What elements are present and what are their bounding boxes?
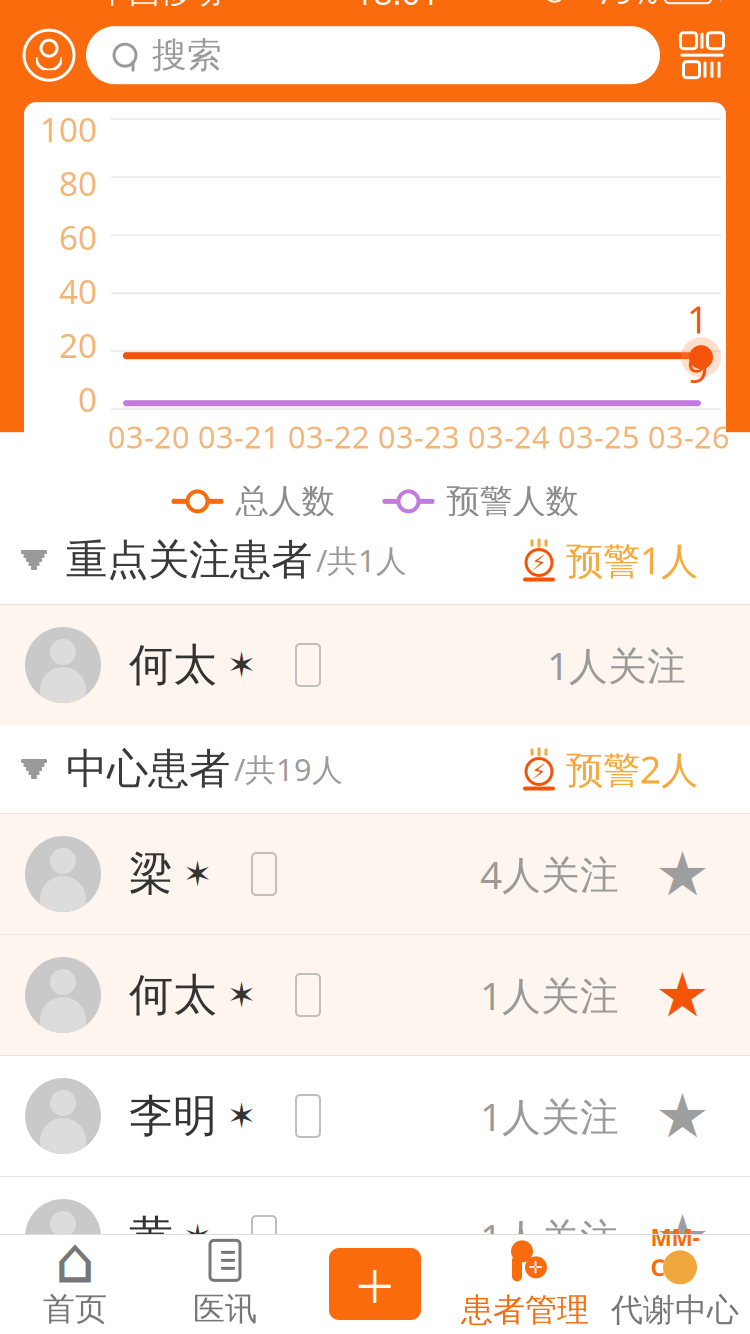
- staticText: 40: [59, 269, 97, 313]
- button[interactable]: MMC: [600, 1234, 750, 1334]
- staticText: MMC: [650, 1222, 699, 1282]
- staticText: 03-20: [108, 416, 190, 457]
- staticText: 总人数: [235, 481, 334, 522]
- button[interactable]: 搜索: [86, 26, 660, 84]
- button[interactable]: 个人中心: [12, 18, 86, 92]
- staticText: ★: [655, 1202, 710, 1272]
- staticText: 黄: [129, 1210, 173, 1264]
- button[interactable]: ⌂: [0, 1234, 150, 1334]
- staticText: 80: [59, 161, 97, 205]
- staticText: 19: [687, 294, 708, 393]
- staticText: 03-26: [648, 416, 730, 457]
- staticText: 梁: [129, 847, 173, 901]
- staticText: ✶: [227, 645, 256, 685]
- staticText: ⚡︎: [531, 550, 546, 575]
- staticText: /共19人: [234, 749, 343, 789]
- staticText: 20: [59, 323, 97, 367]
- button[interactable]: 何太: [0, 935, 750, 1055]
- staticText: 03-22: [288, 416, 370, 457]
- staticText: 1人关注: [480, 969, 619, 1021]
- staticText: +: [355, 1238, 395, 1330]
- staticText: 中心患者: [66, 744, 230, 794]
- staticText: ✶: [227, 975, 256, 1015]
- staticText: ⚡︎: [531, 759, 546, 784]
- staticText: 0: [78, 377, 97, 421]
- button[interactable]: 何太: [0, 605, 750, 725]
- staticText: 代谢中心: [611, 1290, 739, 1330]
- staticText: 预警人数: [446, 481, 578, 522]
- staticText: 中国移动: [98, 0, 222, 11]
- staticText: /共1人: [316, 540, 407, 580]
- staticText: ✶: [183, 1217, 212, 1257]
- staticText: 03-24: [468, 416, 550, 457]
- staticText: 100: [40, 107, 97, 151]
- staticText: 03-23: [378, 416, 460, 457]
- staticText: 重点关注患者: [66, 535, 312, 585]
- staticText: 1人关注: [547, 639, 686, 691]
- staticText: 4人关注: [480, 848, 619, 900]
- button[interactable]: 中心患者: [0, 725, 750, 813]
- staticText: 1人关注: [480, 1211, 619, 1263]
- button[interactable]: 新增: [300, 1234, 450, 1334]
- staticText: ⚡︎: [718, 0, 736, 7]
- staticText: 何太: [129, 638, 217, 692]
- button[interactable]: 重点关注患者: [0, 516, 750, 604]
- staticText: ⌂: [54, 1224, 95, 1297]
- button[interactable]: 梁: [0, 814, 750, 934]
- button[interactable]: 医讯: [150, 1234, 300, 1334]
- staticText: 60: [59, 215, 97, 259]
- staticText: ✶: [227, 1096, 256, 1136]
- staticText: ★: [655, 1081, 710, 1151]
- staticText: 何太: [129, 968, 217, 1022]
- button[interactable]: ✛: [450, 1234, 600, 1334]
- staticText: 搜索: [152, 34, 222, 76]
- button[interactable]: 黄: [0, 1177, 750, 1297]
- staticText: 预警2人: [566, 744, 698, 794]
- staticText: 首页: [43, 1289, 107, 1329]
- button[interactable]: 李明: [0, 1056, 750, 1176]
- staticText: ✶: [183, 854, 212, 894]
- staticText: 1人关注: [480, 1090, 619, 1142]
- button[interactable]: 扫一扫: [660, 18, 744, 92]
- staticText: 03-21: [198, 416, 280, 457]
- staticText: 患者管理: [461, 1290, 589, 1330]
- staticText: 医讯: [193, 1289, 257, 1329]
- staticText: ★: [655, 960, 710, 1030]
- staticText: 79%: [597, 0, 658, 13]
- staticText: 预警1人: [566, 535, 698, 585]
- staticText: ✛: [528, 1257, 543, 1277]
- staticText: 18:01: [354, 0, 439, 14]
- staticText: 李明: [129, 1089, 217, 1143]
- staticText: 03-25: [558, 416, 640, 457]
- staticText: ★: [655, 839, 710, 909]
